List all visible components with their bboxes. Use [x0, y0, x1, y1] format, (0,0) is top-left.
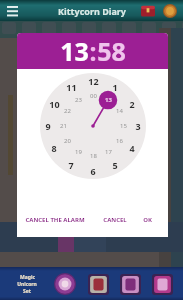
button[interactable]: 00 — [85, 88, 101, 104]
staticText: 1 — [112, 81, 118, 93]
staticText: 22 — [64, 107, 71, 115]
button[interactable]: Wardrobe — [149, 271, 175, 297]
staticText: 2 — [129, 98, 135, 110]
button[interactable]: Mirror — [85, 271, 111, 297]
staticText: Kittycorn Diary — [58, 5, 126, 17]
button[interactable]: 22 — [59, 103, 75, 119]
button[interactable]: CANCEL — [99, 213, 131, 227]
staticText: 5 — [112, 159, 118, 171]
button[interactable]: Pony — [117, 271, 143, 297]
button[interactable]: 13 — [100, 92, 116, 108]
button[interactable]: 4 — [124, 140, 140, 156]
staticText: CANCEL — [103, 216, 127, 224]
staticText: 10 — [49, 98, 60, 110]
staticText: 18 — [90, 152, 97, 160]
button[interactable]: 16 — [111, 133, 127, 149]
staticText: Set — [23, 288, 31, 295]
staticText: 17 — [105, 148, 112, 156]
button[interactable]: Magic — [8, 270, 46, 298]
button[interactable]: OK — [139, 213, 156, 227]
button[interactable]: 13 — [60, 34, 89, 68]
staticText: 58 — [97, 34, 126, 68]
button[interactable]: Unicorn — [52, 271, 78, 297]
button[interactable]: 5 — [107, 157, 123, 173]
staticText: 23 — [75, 96, 82, 104]
button[interactable]: Menu — [4, 3, 20, 19]
staticText: 19 — [75, 148, 82, 156]
button[interactable]: 2 — [124, 96, 140, 112]
button[interactable]: 20 — [59, 133, 75, 149]
button[interactable]: 3 — [130, 118, 146, 134]
staticText: 16 — [116, 137, 123, 145]
button[interactable]: Coins — [161, 2, 178, 19]
staticText: 12 — [88, 75, 99, 87]
button[interactable]: 8 — [46, 140, 62, 156]
staticText: 11 — [66, 81, 77, 93]
button[interactable]: 14 — [111, 103, 127, 119]
button[interactable]: 11 — [63, 79, 79, 95]
button[interactable]: 12 — [85, 73, 101, 89]
staticText: 14 — [116, 107, 123, 115]
staticText: OK — [143, 216, 152, 224]
button[interactable]: 23 — [70, 92, 86, 108]
staticText: 00 — [90, 92, 97, 100]
button[interactable]: 6 — [85, 163, 101, 179]
staticText: CANCEL THE ALARM — [25, 216, 85, 224]
staticText: 3 — [135, 120, 141, 132]
staticText: Unicorn — [17, 281, 37, 288]
staticText: 6 — [90, 165, 96, 177]
staticText: 8 — [51, 142, 57, 154]
button[interactable]: CANCEL THE ALARM — [23, 213, 87, 227]
button[interactable]: 7 — [63, 157, 79, 173]
button[interactable]: 15 — [115, 118, 131, 134]
button[interactable]: Treasure chest — [139, 2, 156, 19]
button[interactable]: 1 — [107, 79, 123, 95]
button[interactable]: 21 — [55, 118, 71, 134]
button[interactable]: 9 — [40, 118, 56, 134]
button[interactable]: 10 — [46, 96, 62, 112]
button[interactable]: 17 — [100, 144, 116, 160]
staticText: 20 — [64, 137, 71, 145]
staticText: 7 — [68, 159, 74, 171]
staticText: 13 — [105, 96, 112, 104]
staticText: 4 — [129, 142, 135, 154]
staticText: : — [89, 34, 97, 68]
staticText: 21 — [60, 122, 67, 130]
button[interactable]: 19 — [70, 144, 86, 160]
button[interactable]: 58 — [97, 34, 126, 68]
staticText: Magic — [20, 274, 35, 281]
staticText: 15 — [120, 122, 127, 130]
staticText: 9 — [45, 120, 51, 132]
button[interactable]: 18 — [85, 148, 101, 164]
staticText: 13 — [60, 34, 89, 68]
